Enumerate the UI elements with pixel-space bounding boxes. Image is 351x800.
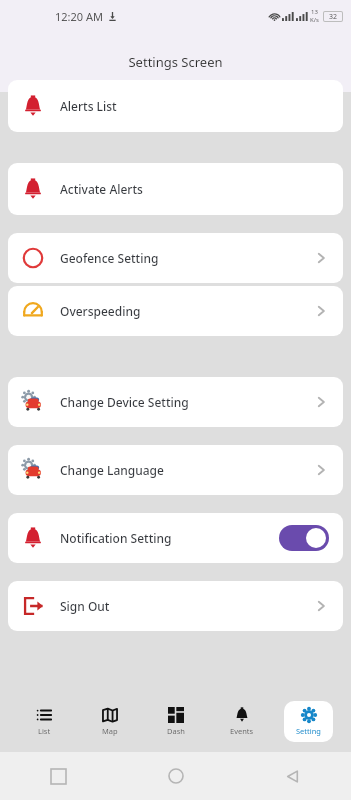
staticText: Map <box>102 726 118 736</box>
other: Home <box>168 768 184 784</box>
staticText: Change Language <box>60 462 164 478</box>
button[interactable]: Change Device Setting <box>8 377 343 427</box>
staticText: Dash <box>167 726 185 736</box>
staticText: K/s <box>310 16 319 24</box>
staticText: Change Device Setting <box>60 394 189 410</box>
staticText: 32 <box>329 12 338 21</box>
button[interactable]: List <box>24 701 64 742</box>
staticText: Activate Alerts <box>60 181 143 197</box>
staticText: Sign Out <box>60 598 110 614</box>
staticText: 13 <box>311 8 318 16</box>
other: Recents <box>51 769 66 784</box>
staticText: Setting <box>296 726 321 736</box>
button[interactable]: Activate Alerts <box>8 163 343 215</box>
staticText: Settings Screen <box>128 53 223 71</box>
button[interactable]: Alerts List <box>8 80 343 132</box>
staticText: List <box>38 726 51 736</box>
button[interactable]: Setting <box>284 701 333 742</box>
staticText: Alerts List <box>60 98 117 114</box>
staticText: Events <box>230 726 254 736</box>
staticText: 12:20 AM <box>55 9 103 24</box>
button[interactable]: Geofence Setting <box>8 233 343 283</box>
button[interactable]: Notification toggle <box>279 525 329 551</box>
button[interactable]: Change Language <box>8 445 343 495</box>
button[interactable]: Sign Out <box>8 581 343 631</box>
button[interactable]: Overspeeding <box>8 286 343 336</box>
staticText: Overspeeding <box>60 303 141 319</box>
button[interactable]: Map <box>90 701 130 742</box>
staticText: Notification Setting <box>60 530 172 546</box>
button[interactable]: Notification Setting <box>8 513 343 563</box>
staticText: Geofence Setting <box>60 250 159 266</box>
other: Back <box>285 769 300 784</box>
button[interactable]: Dash <box>155 701 197 742</box>
button[interactable]: Events <box>218 701 266 742</box>
